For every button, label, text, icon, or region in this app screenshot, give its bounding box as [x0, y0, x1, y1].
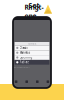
button[interactable]: Classic [15, 45, 49, 50]
button[interactable]: Search [36, 80, 39, 83]
staticText: Classic [20, 46, 28, 50]
button[interactable]: Opening [15, 55, 49, 60]
staticText: More ringtones in store [14, 66, 30, 68]
staticText: Ringtone [24, 3, 43, 20]
staticText: Marimba [20, 51, 30, 54]
button[interactable]: Settings [47, 80, 49, 83]
staticText: Tones [28, 42, 36, 45]
staticText: Opening [20, 56, 33, 59]
staticText: Set [28, 1, 39, 10]
button[interactable]: Radiate [15, 60, 49, 65]
button[interactable]: Browse [25, 80, 28, 83]
button[interactable]: Marimba [15, 50, 49, 55]
staticText: Radiate [20, 60, 30, 64]
button[interactable]: Library [15, 80, 17, 83]
